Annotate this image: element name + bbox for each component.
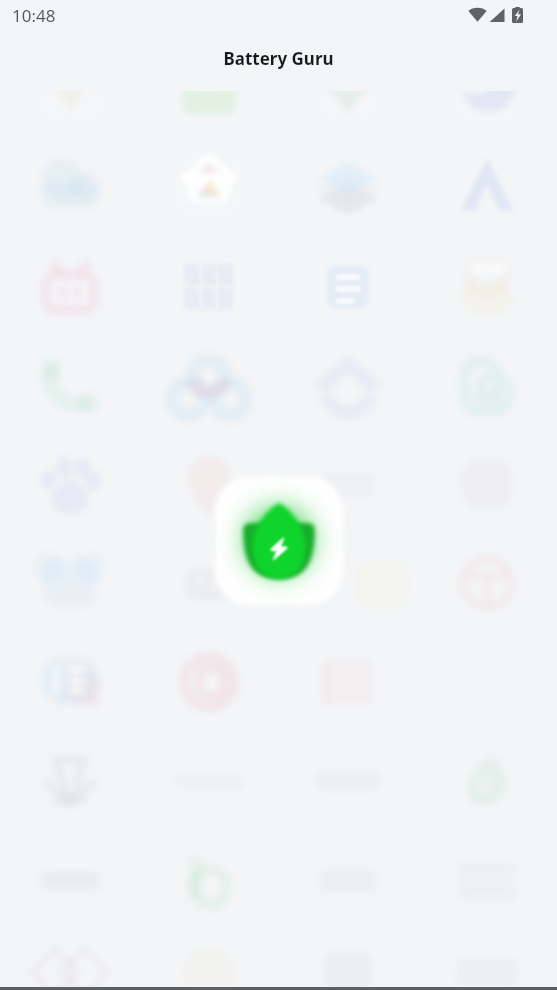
staticText: Battery Guru xyxy=(223,47,334,70)
staticText: 10:48 xyxy=(12,4,56,27)
button[interactable]: Battery Guru xyxy=(0,446,557,990)
